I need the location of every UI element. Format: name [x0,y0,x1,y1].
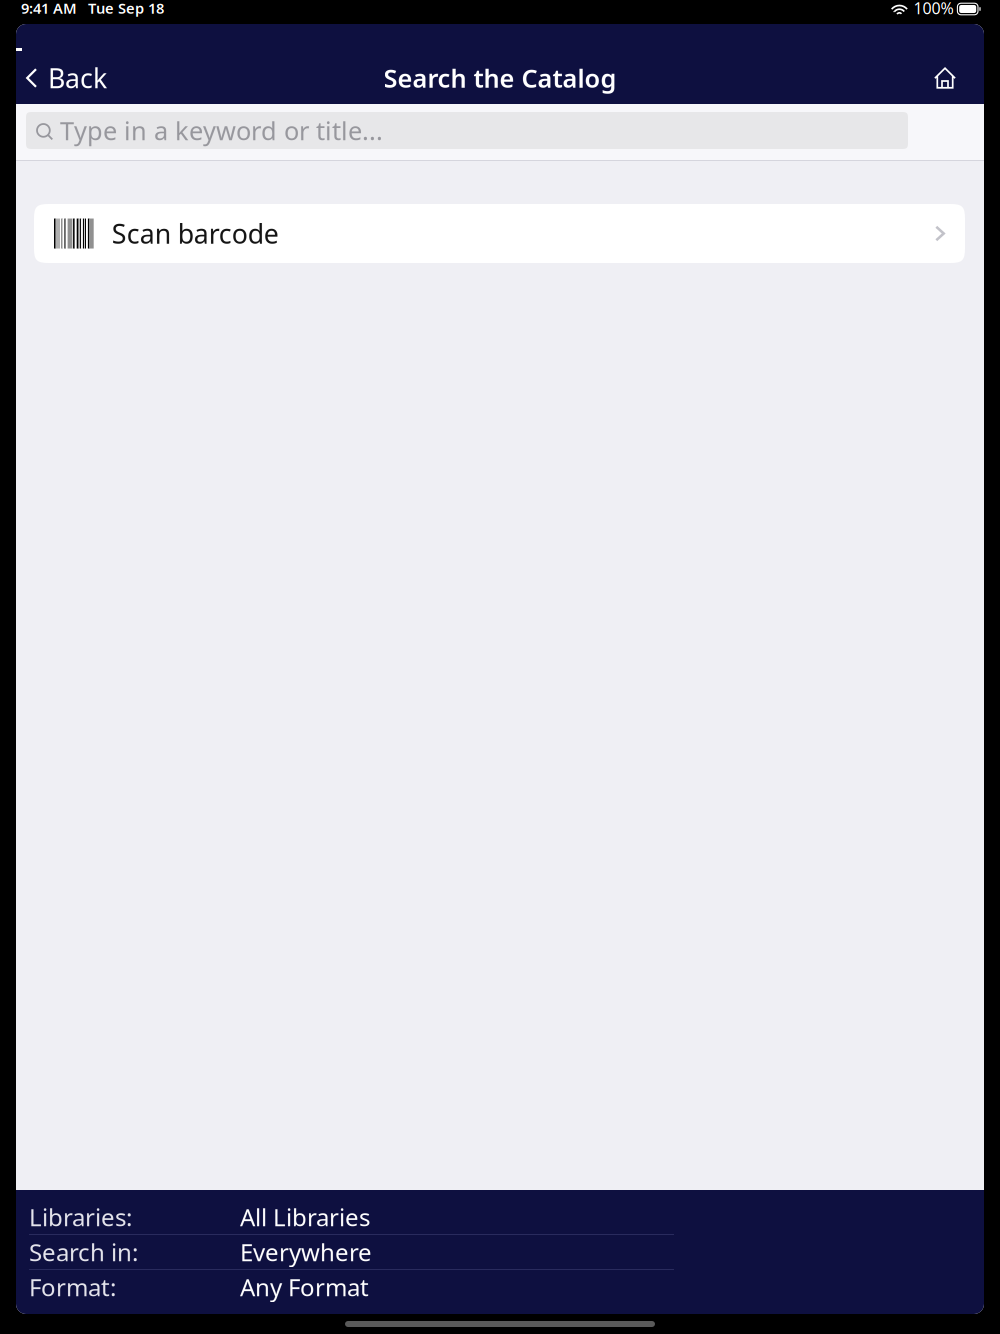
staticText: All Libraries [240,1201,370,1233]
staticText: Everywhere [240,1236,372,1268]
staticText: 100% [913,0,953,19]
button[interactable]: Type in a keyword or title... [26,112,908,149]
staticText: Search in: [29,1236,138,1268]
staticText: Libraries: [29,1201,132,1233]
staticText: Scan barcode [112,216,279,251]
button[interactable]: Scan barcode [34,204,965,263]
button[interactable]: Search in: [16,1235,984,1270]
staticText: Type in a keyword or title... [60,114,383,147]
staticText: Search the Catalog [383,61,616,95]
button[interactable]: Back [16,51,121,105]
button[interactable]: Home [920,56,984,100]
staticText: Back [48,60,107,96]
staticText: 9:41 AM [21,0,77,18]
staticText: Format: [29,1271,116,1303]
button[interactable]: Format: [16,1270,984,1304]
staticText: Any Format [240,1271,369,1303]
staticText: Tue Sep 18 [88,0,164,18]
button[interactable]: Libraries: [16,1200,984,1235]
